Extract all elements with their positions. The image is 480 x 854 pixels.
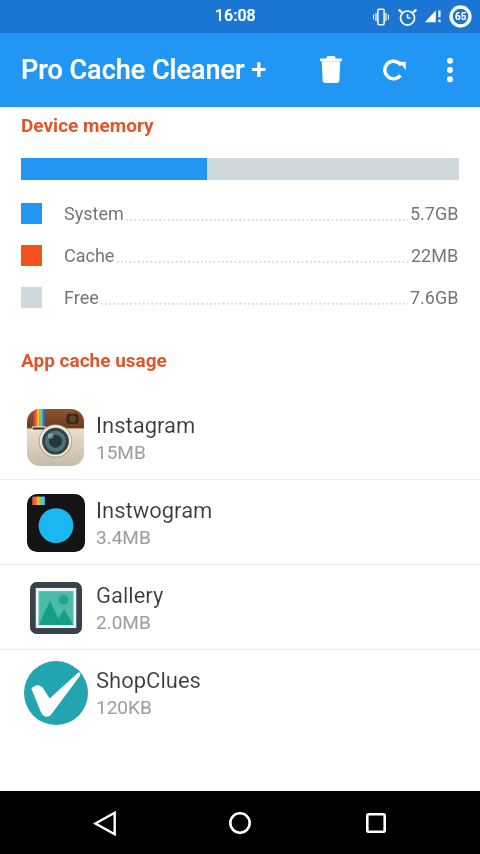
- staticText: Gallery: [96, 583, 164, 609]
- staticText: Cache: [64, 245, 115, 266]
- staticText: System: [64, 203, 124, 224]
- button[interactable]: Gallery: [0, 565, 480, 650]
- staticText: 120KB: [96, 696, 152, 718]
- staticText: Free: [64, 287, 99, 308]
- staticText: 5.7GB: [410, 203, 459, 224]
- staticText: App cache usage: [21, 349, 167, 371]
- staticText: Instwogram: [96, 498, 213, 524]
- staticText: Device memory: [21, 114, 154, 136]
- button[interactable]: More options: [426, 46, 474, 94]
- button[interactable]: Refresh: [371, 46, 419, 94]
- staticText: 22MB: [411, 245, 459, 266]
- button[interactable]: Instwogram: [0, 480, 480, 565]
- button[interactable]: Instagram: [0, 395, 480, 480]
- staticText: 3.4MB: [96, 526, 151, 548]
- button[interactable]: ShopClues: [0, 650, 480, 735]
- button[interactable]: Back: [74, 792, 136, 854]
- staticText: 16:08: [215, 6, 256, 25]
- staticText: 7.6GB: [410, 287, 459, 308]
- button[interactable]: Delete: [307, 46, 355, 94]
- staticText: Instagram: [96, 413, 196, 439]
- staticText: ShopClues: [96, 668, 201, 694]
- staticText: 2.0MB: [96, 611, 151, 633]
- staticText: Pro Cache Cleaner +: [21, 54, 267, 86]
- button[interactable]: Recents: [345, 792, 407, 854]
- staticText: 15MB: [96, 441, 146, 463]
- button[interactable]: Home: [209, 792, 271, 854]
- staticText: 65: [455, 11, 467, 23]
